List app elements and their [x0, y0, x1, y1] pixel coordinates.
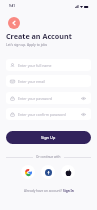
- staticText: Enter your confirm password: [18, 112, 66, 117]
- button[interactable]: Enter your full name: [6, 59, 91, 71]
- button[interactable]: Enter your email: [6, 75, 91, 87]
- button[interactable]: Sign Up: [6, 131, 91, 144]
- button[interactable]: Show password: [81, 112, 86, 117]
- button[interactable]: Enter your confirm password: [6, 108, 91, 120]
- staticText: Or continue with: [36, 155, 61, 159]
- button[interactable]: Enter your password: [6, 92, 91, 104]
- button[interactable]: Google: [21, 165, 35, 179]
- staticText: Enter your password: [18, 96, 52, 101]
- staticText: Create an Account: [6, 31, 72, 41]
- button[interactable]: Back: [8, 17, 20, 29]
- button[interactable]: Apple: [61, 165, 75, 179]
- staticText: Let's sign up. Apply to jobs: [6, 42, 48, 46]
- button[interactable]: Show password: [81, 96, 86, 101]
- button[interactable]: Facebook: [41, 165, 55, 179]
- staticText: Enter your full name: [18, 63, 52, 68]
- button[interactable]: Sign In: [63, 189, 74, 193]
- staticText: Sign Up: [41, 135, 56, 140]
- staticText: Enter your email: [18, 79, 46, 84]
- staticText: 9:41: [9, 4, 15, 8]
- staticText: Already have an account?: [24, 189, 63, 193]
